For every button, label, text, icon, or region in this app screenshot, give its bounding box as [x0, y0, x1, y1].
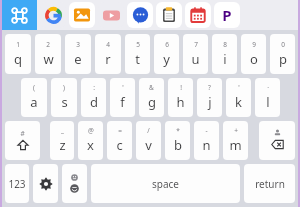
button[interactable]: Keyboard menu [2, 0, 37, 30]
staticText: d [90, 93, 98, 111]
button[interactable]: 7 [183, 34, 208, 74]
staticText: 4 [106, 40, 110, 49]
button[interactable]: 1 [5, 34, 31, 74]
staticText: j [208, 93, 212, 111]
staticText: i [223, 50, 227, 68]
button[interactable]: _ [50, 121, 74, 160]
staticText: h [176, 93, 185, 111]
staticText: _ [61, 126, 64, 135]
button[interactable]: ( [21, 78, 47, 117]
staticText: s [61, 93, 68, 111]
button[interactable]: Google search [40, 2, 66, 28]
button[interactable]: 5 [125, 34, 150, 74]
staticText: r [105, 50, 111, 68]
button[interactable]: : [81, 78, 106, 117]
staticText: : [93, 83, 95, 92]
staticText: return [255, 177, 285, 191]
staticText: 0 [281, 40, 285, 49]
staticText: - [205, 126, 208, 135]
button[interactable]: YouTube [98, 2, 124, 28]
staticText: ) [63, 83, 65, 92]
button[interactable]: * [165, 121, 190, 160]
button[interactable]: return [244, 164, 295, 203]
button[interactable]: 6 [154, 34, 179, 74]
staticText: & [149, 83, 154, 92]
button[interactable]: Clipboard [156, 2, 182, 28]
button[interactable]: Calendar [185, 2, 211, 28]
staticText: p [279, 50, 287, 68]
button[interactable]: = [107, 121, 132, 160]
staticText: 2 [46, 40, 50, 49]
button[interactable]: # [5, 121, 40, 160]
staticText: ( [33, 83, 35, 92]
button[interactable]: space [91, 164, 240, 203]
button[interactable]: 0 [270, 34, 295, 74]
button[interactable]: Emoji [62, 164, 87, 203]
button[interactable]: & [139, 78, 164, 117]
staticText: ' [122, 83, 124, 92]
staticText: u [191, 50, 200, 68]
button[interactable]: 4 [95, 34, 121, 74]
button[interactable]: Backspace [259, 121, 295, 160]
staticText: a [30, 93, 38, 111]
staticText: g [148, 93, 156, 111]
staticText: l [266, 93, 270, 111]
staticText: q [14, 50, 22, 68]
staticText: z [59, 136, 66, 154]
staticText: n [202, 136, 211, 154]
button[interactable]: · [255, 78, 280, 117]
staticText: 1 [16, 40, 20, 49]
staticText: w [43, 50, 54, 68]
staticText: 123 [8, 177, 26, 191]
button[interactable]: + [223, 121, 248, 160]
button[interactable]: ' [110, 78, 135, 117]
button[interactable]: 2 [35, 34, 61, 74]
staticText: = [118, 126, 122, 135]
staticText: space [152, 177, 179, 191]
staticText: 8 [223, 40, 227, 49]
staticText: 3 [76, 40, 80, 49]
staticText: P [222, 5, 232, 25]
button[interactable]: Payments [214, 2, 240, 28]
button[interactable]: ? [197, 78, 222, 117]
staticText: ? [208, 83, 211, 92]
staticText: f [120, 93, 125, 111]
button[interactable]: @ [78, 121, 103, 160]
staticText: t [135, 50, 140, 68]
staticText: y [163, 50, 170, 68]
staticText: k [235, 93, 242, 111]
staticText: @ [88, 126, 94, 135]
staticText: · [267, 83, 269, 92]
staticText: e [74, 50, 82, 68]
staticText: m [229, 136, 242, 154]
staticText: o [250, 50, 258, 68]
button[interactable]: 123 [5, 164, 29, 203]
staticText: 5 [136, 40, 140, 49]
staticText: / [147, 126, 150, 135]
staticText: b [174, 136, 182, 154]
button[interactable]: ' [226, 78, 251, 117]
button[interactable]: ) [51, 78, 77, 117]
staticText: 7 [194, 40, 198, 49]
button[interactable]: Messages [127, 2, 153, 28]
button[interactable]: 8 [212, 34, 237, 74]
button[interactable]: / [136, 121, 161, 160]
staticText: ' [238, 83, 240, 92]
button[interactable]: ! [168, 78, 193, 117]
staticText: + [234, 126, 238, 135]
staticText: 9 [252, 40, 256, 49]
button[interactable]: Stickers [69, 2, 95, 28]
staticText: c [116, 136, 123, 154]
staticText: 6 [165, 40, 169, 49]
staticText: x [87, 136, 94, 154]
button[interactable]: Settings [33, 164, 58, 203]
button[interactable]: 3 [65, 34, 91, 74]
staticText: v [145, 136, 152, 154]
staticText: * [176, 126, 180, 135]
button[interactable]: - [194, 121, 219, 160]
staticText: # [20, 129, 25, 138]
button[interactable]: 9 [241, 34, 266, 74]
staticText: ! [180, 83, 182, 92]
